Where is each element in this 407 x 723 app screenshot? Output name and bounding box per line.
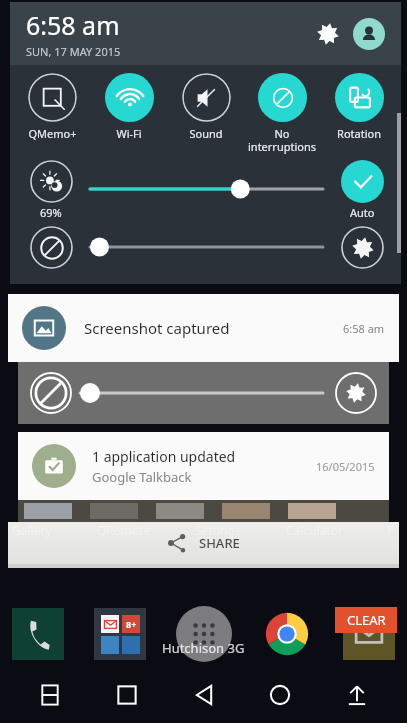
button[interactable]: User profile <box>353 18 385 50</box>
staticText: SHARE <box>199 534 240 552</box>
button[interactable]: Auto <box>333 160 391 218</box>
button[interactable]: Email <box>343 608 395 660</box>
button[interactable]: Rotation <box>323 73 395 141</box>
button[interactable]: Sound settings <box>333 224 391 270</box>
staticText: CLEAR <box>347 611 386 629</box>
staticText: Rotation <box>337 126 381 141</box>
button[interactable]: Back <box>177 668 231 722</box>
button[interactable]: Phone <box>12 608 64 660</box>
button[interactable]: Volume slider <box>90 232 323 262</box>
button[interactable]: Dual window <box>23 668 77 722</box>
button[interactable]: All apps <box>176 606 232 662</box>
staticText: Auto <box>350 205 375 218</box>
button[interactable]: Brightness slider <box>90 171 323 207</box>
button[interactable]: QMemo+ <box>16 73 88 141</box>
staticText: 6:58 am <box>26 8 120 42</box>
button[interactable]: SHARE <box>8 522 399 564</box>
button[interactable]: Chrome <box>261 608 313 660</box>
staticText: 8+ <box>126 618 137 630</box>
button[interactable]: Wi-Fi <box>93 73 165 141</box>
staticText: SUN, 17 MAY 2015 <box>26 44 121 59</box>
staticText: 1 application updated <box>92 447 236 466</box>
staticText: No interruptions <box>248 126 316 154</box>
button[interactable]: Mute <box>20 224 82 270</box>
button[interactable]: Brightness 69% <box>20 160 82 218</box>
button[interactable]: Sound <box>170 73 242 141</box>
button[interactable]: Google folder <box>94 608 146 660</box>
staticText: Screenshot captured <box>84 318 230 338</box>
button[interactable]: Volume slider <box>80 378 323 408</box>
button[interactable]: 1 application updated <box>18 432 389 500</box>
button[interactable]: Hide notification <box>330 668 384 722</box>
button[interactable]: No interruptions <box>246 73 318 154</box>
button[interactable]: Recents <box>100 668 154 722</box>
button[interactable]: CLEAR <box>335 607 397 633</box>
staticText: Hutchison 3G <box>162 639 245 657</box>
button[interactable]: Mute <box>28 370 74 416</box>
staticText: Google Talkback <box>92 468 192 486</box>
staticText: 69% <box>40 205 62 218</box>
button[interactable]: Home <box>253 668 307 722</box>
button[interactable]: Screenshot captured <box>8 294 399 362</box>
staticText: Sound <box>189 126 223 141</box>
staticText: QMemo+ <box>28 126 77 141</box>
button[interactable]: Settings <box>311 17 345 51</box>
button[interactable]: Sound settings <box>333 370 379 416</box>
staticText: 16/05/2015 <box>316 459 375 474</box>
staticText: Wi-Fi <box>116 126 142 141</box>
staticText: 6:58 am <box>343 321 385 336</box>
